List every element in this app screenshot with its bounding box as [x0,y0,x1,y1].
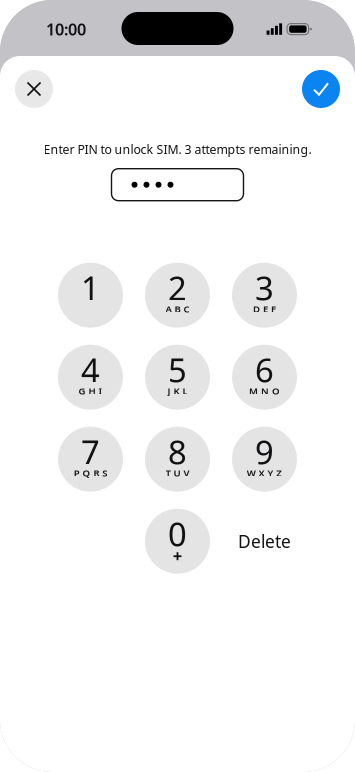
staticText: 0 [168,511,187,556]
staticText: 4 [81,347,100,392]
button[interactable]: 5 [145,345,210,410]
staticText: O [272,384,280,397]
staticText: 3 [255,265,274,310]
staticText: Y [267,466,273,479]
staticText: Z [276,466,282,479]
staticText: C [183,302,189,315]
button[interactable]: 6 [232,345,297,410]
button[interactable]: 1 [58,263,123,328]
button[interactable]: 3 [232,263,297,328]
staticText: S [102,466,107,479]
button[interactable]: Close [15,70,53,108]
staticText: J [168,384,171,397]
staticText: X [259,466,265,479]
staticText: M [249,384,258,397]
staticText: 8 [168,429,187,474]
staticText: L [182,384,187,397]
staticText: R [93,466,99,479]
staticText: I [98,384,102,397]
button[interactable]: Delete [232,509,297,574]
staticText: A [166,302,172,315]
staticText: 7 [81,429,100,474]
staticText: Q [83,466,91,479]
staticText: K [173,384,179,397]
staticText: 1 [81,265,100,310]
staticText: Delete [238,529,291,553]
staticText: G [79,384,86,397]
staticText: D [253,302,260,315]
staticText: V [183,466,189,479]
button[interactable]: 4 [58,345,123,410]
staticText: 9 [255,429,274,474]
staticText: 2 [168,265,187,310]
button[interactable]: 2 [145,263,210,328]
staticText: P [74,466,80,479]
staticText: F [271,302,276,315]
button[interactable]: 0 [145,509,210,574]
staticText: N [261,384,269,397]
staticText: U [173,466,180,479]
button[interactable]: Confirm [302,70,340,108]
staticText: Enter PIN to unlock SIM. 3 attempts rema… [43,141,311,158]
staticText: 5 [168,347,187,392]
button[interactable]: 9 [232,427,297,492]
staticText: B [174,302,180,315]
staticText: E [263,302,268,315]
staticText: 6 [255,347,274,392]
button[interactable]: 7 [58,427,123,492]
staticText: W [247,466,256,479]
staticText: T [166,466,171,479]
staticText: H [88,384,95,397]
button[interactable]: 8 [145,427,210,492]
staticText: 10:00 [46,18,86,40]
